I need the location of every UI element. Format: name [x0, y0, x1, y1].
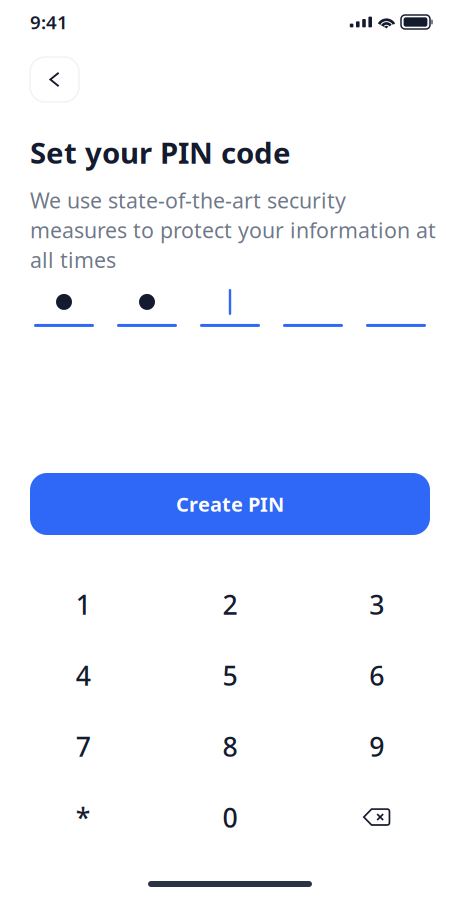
button[interactable]: 8 — [157, 711, 303, 782]
button[interactable]: 7 — [10, 711, 157, 782]
button[interactable]: Back — [30, 57, 79, 102]
button[interactable]: 6 — [303, 640, 450, 711]
staticText: We use state-of-the-art security — [30, 186, 346, 214]
button[interactable]: Create PIN — [30, 473, 430, 535]
staticText: Set your PIN code — [30, 133, 291, 172]
staticText: 4 — [76, 658, 91, 693]
button[interactable]: 1 — [10, 569, 157, 640]
button[interactable]: 9 — [303, 711, 450, 782]
button[interactable]: 5 — [157, 640, 303, 711]
staticText: 1 — [76, 587, 91, 622]
staticText: all times — [30, 246, 116, 274]
staticText: 5 — [222, 658, 237, 693]
button[interactable]: 3 — [303, 569, 450, 640]
staticText: 6 — [369, 658, 384, 693]
staticText: 7 — [76, 729, 91, 764]
button[interactable]: Delete — [303, 782, 450, 853]
staticText: 3 — [369, 587, 384, 622]
staticText: 0 — [222, 800, 237, 835]
staticText: 2 — [222, 587, 237, 622]
staticText: 8 — [222, 729, 237, 764]
staticText: 9 — [369, 729, 384, 764]
staticText: Create PIN — [176, 491, 284, 517]
staticText: 9:41 — [30, 10, 68, 34]
staticText: measures to protect your information at — [30, 216, 436, 244]
button[interactable]: * — [10, 782, 157, 853]
button[interactable]: 2 — [157, 569, 303, 640]
button[interactable]: 0 — [157, 782, 303, 853]
staticText: * — [76, 800, 91, 835]
button[interactable]: 4 — [10, 640, 157, 711]
